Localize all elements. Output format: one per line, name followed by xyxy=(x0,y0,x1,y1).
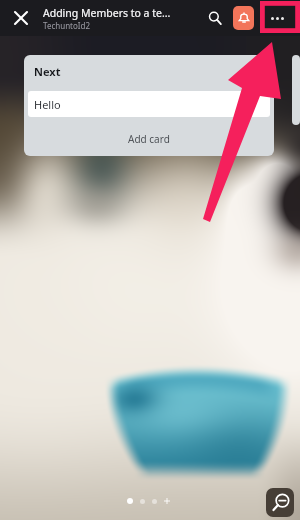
button[interactable]: Hello xyxy=(28,91,270,117)
button[interactable]: Close xyxy=(0,0,42,36)
button[interactable] xyxy=(292,55,300,125)
staticText: Add card xyxy=(128,132,170,146)
button[interactable]: More options highlight xyxy=(260,1,300,33)
button[interactable]: Notifications xyxy=(233,6,254,30)
button[interactable]: Next xyxy=(24,55,274,156)
staticText: TechuntoId2 xyxy=(43,20,91,31)
staticText: Next xyxy=(34,64,61,79)
button[interactable]: More options xyxy=(254,0,300,36)
button[interactable]: Zoom out xyxy=(266,488,294,517)
staticText: Adding Members to a te... xyxy=(43,6,171,20)
staticText: Hello xyxy=(34,97,61,112)
button[interactable]: Add card xyxy=(24,117,274,156)
button[interactable]: Search xyxy=(200,0,230,36)
